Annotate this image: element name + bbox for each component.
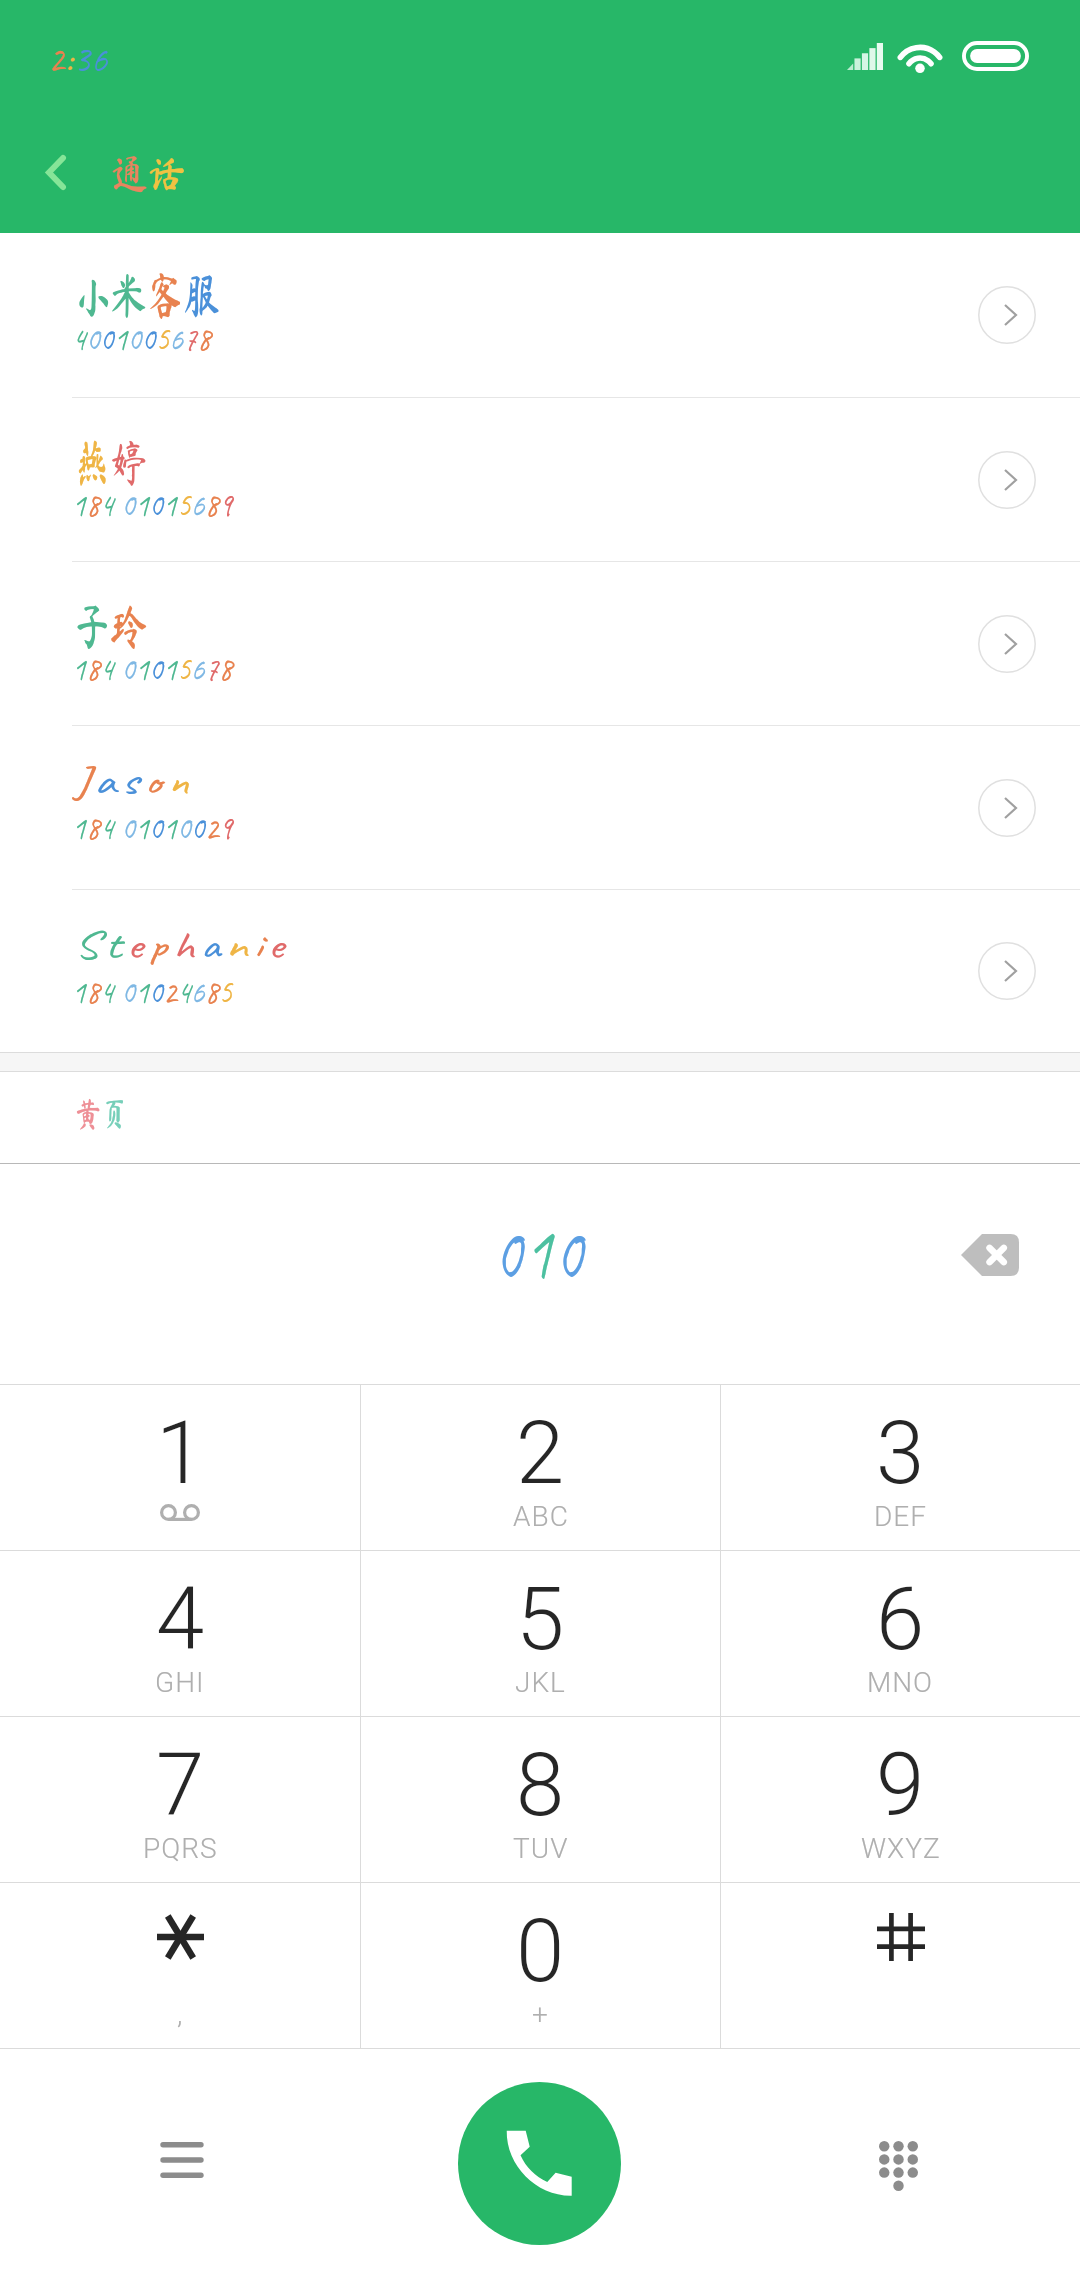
staticText: MNO — [867, 1666, 934, 1699]
button[interactable]: Jason — [0, 726, 1080, 889]
staticText: WXYZ — [861, 1832, 941, 1865]
staticText: 184 01015678 — [72, 647, 233, 690]
staticText: 3 — [876, 1402, 925, 1504]
staticText: 4001005678 — [72, 317, 212, 360]
button[interactable]: Backspace — [950, 1215, 1030, 1295]
staticText: Stephanie — [74, 921, 289, 970]
button[interactable]: Back — [18, 132, 94, 212]
button[interactable]: 1 — [0, 1385, 360, 1550]
staticText: DEF — [874, 1500, 928, 1533]
button[interactable]: Open contact — [972, 936, 1042, 1006]
button[interactable]: 子玲 — [0, 562, 1080, 725]
staticText: 4 — [156, 1568, 205, 1670]
staticText: , — [177, 1998, 184, 2031]
staticText: 2 — [516, 1402, 565, 1504]
button[interactable]: 6 — [721, 1551, 1080, 1716]
button[interactable]: Stephanie — [0, 890, 1080, 1052]
staticText: 小米客服 — [74, 270, 220, 320]
staticText: 0 — [516, 1900, 565, 2002]
button[interactable]: Call — [458, 2082, 621, 2245]
staticText: + — [532, 1998, 549, 2031]
staticText: PQRS — [143, 1832, 218, 1865]
button[interactable]: 7 — [0, 1717, 360, 1882]
button[interactable]: Open contact — [972, 609, 1042, 679]
staticText: TUV — [513, 1832, 569, 1865]
staticText: 184 01010029 — [72, 806, 233, 849]
staticText: 184 01015689 — [72, 483, 233, 526]
button[interactable]: 黄页 — [0, 1072, 1080, 1163]
button[interactable]: 燕婷 — [0, 398, 1080, 561]
staticText: 184 01024685 — [72, 970, 233, 1013]
staticText: 通话 — [111, 152, 186, 194]
staticText: 子玲 — [74, 601, 147, 651]
button[interactable]: Call log — [137, 2115, 227, 2205]
button[interactable]: 5 — [361, 1551, 720, 1716]
button[interactable]: 小米客服 — [0, 233, 1080, 397]
staticText: 7 — [156, 1734, 205, 1836]
button[interactable]: Open contact — [972, 773, 1042, 843]
button[interactable]: 0 — [361, 1883, 720, 2048]
staticText: ABC — [513, 1500, 569, 1533]
staticText: 1 — [156, 1402, 205, 1504]
button[interactable]: Open contact — [972, 280, 1042, 350]
button[interactable]: , — [0, 1883, 360, 2048]
button[interactable]: 4 — [0, 1551, 360, 1716]
button[interactable]: Dialpad — [853, 2121, 943, 2211]
staticText: 8 — [516, 1734, 565, 1836]
staticText: 5 — [516, 1568, 565, 1670]
button[interactable]: 3 — [721, 1385, 1080, 1550]
button[interactable]: 9 — [721, 1717, 1080, 1882]
staticText: 2:36 — [48, 34, 108, 84]
staticText: Jason — [74, 757, 194, 806]
staticText: 9 — [876, 1734, 925, 1836]
button[interactable]: 2 — [361, 1385, 720, 1550]
staticText: GHI — [155, 1666, 205, 1699]
button[interactable] — [721, 1883, 1080, 2048]
button[interactable]: Open contact — [972, 445, 1042, 515]
button[interactable]: 8 — [361, 1717, 720, 1882]
staticText: 6 — [876, 1568, 925, 1670]
staticText: 黄页 — [75, 1097, 128, 1130]
staticText: 燕婷 — [74, 437, 147, 487]
staticText: 010 — [494, 1201, 585, 1302]
staticText: JKL — [515, 1666, 566, 1699]
